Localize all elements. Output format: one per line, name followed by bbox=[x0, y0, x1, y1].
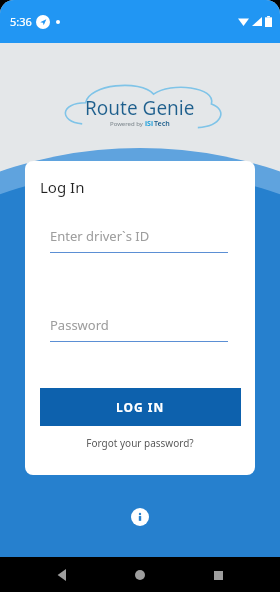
button[interactable]: Information bbox=[131, 508, 149, 526]
button[interactable]: Password bbox=[50, 316, 109, 334]
button[interactable]: Recent apps bbox=[203, 560, 233, 590]
staticText: Route Genie bbox=[85, 95, 195, 121]
staticText: iSi bbox=[145, 119, 154, 129]
staticText: Powered by bbox=[110, 120, 145, 128]
staticText: Tech bbox=[154, 119, 170, 129]
staticText: Forgot your password? bbox=[86, 436, 194, 450]
staticText: 5:36 bbox=[10, 14, 32, 29]
button[interactable]: Back bbox=[48, 560, 78, 590]
staticText: LOG IN bbox=[116, 399, 165, 415]
button[interactable]: Home bbox=[125, 560, 155, 590]
button[interactable]: LOG IN bbox=[40, 388, 241, 426]
button[interactable]: Forgot your password? bbox=[25, 436, 255, 450]
staticText: Log In bbox=[40, 177, 85, 197]
button[interactable]: Enter driver`s ID bbox=[50, 227, 150, 245]
